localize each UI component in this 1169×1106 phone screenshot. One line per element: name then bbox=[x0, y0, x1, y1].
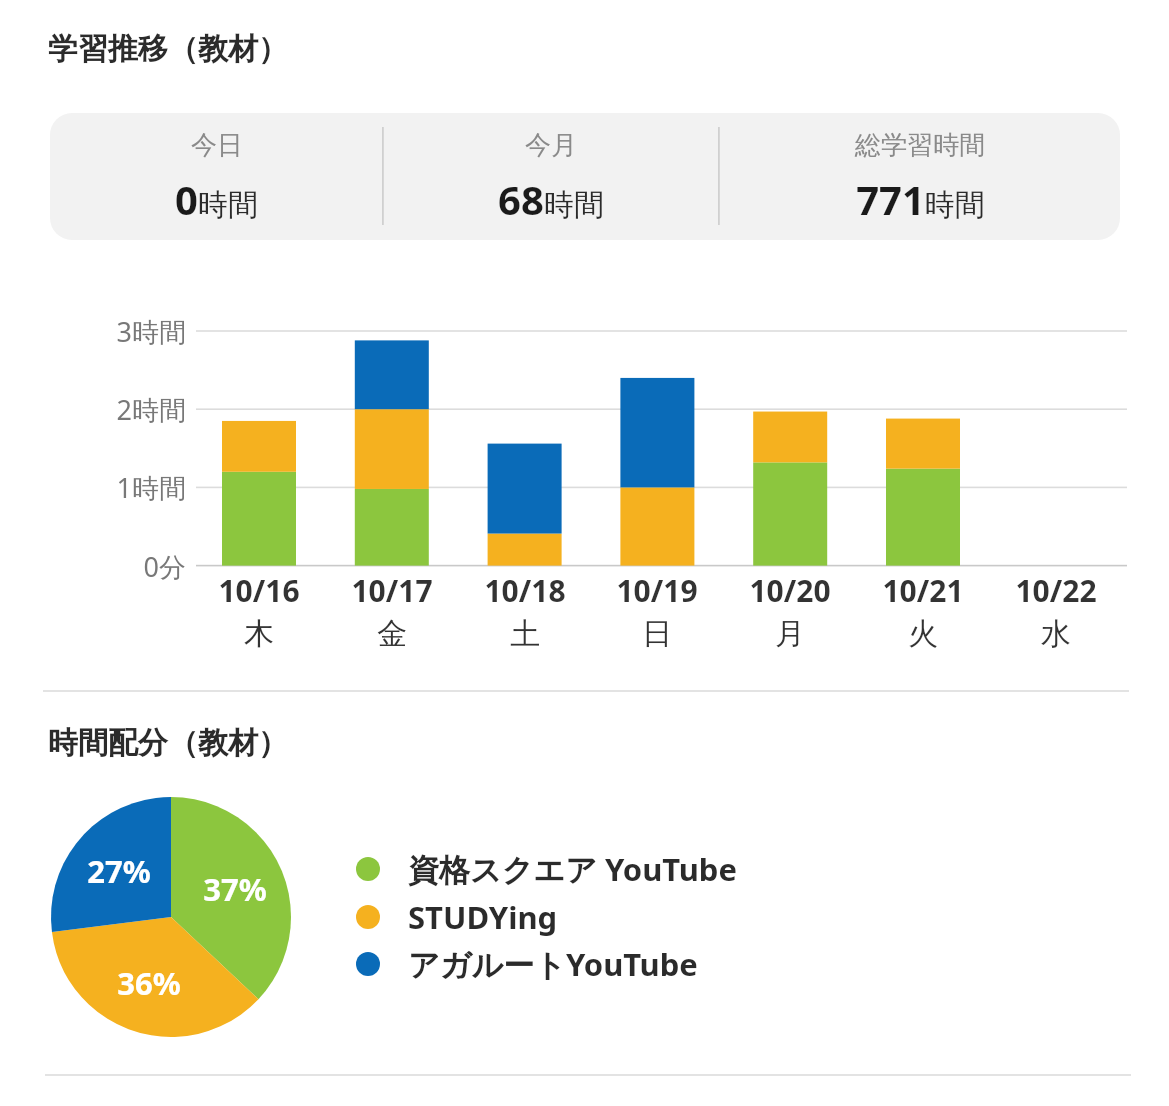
staticText: 10/18 bbox=[484, 570, 566, 611]
staticText: 土 bbox=[510, 615, 540, 650]
button[interactable]: 10/16 bbox=[189, 570, 329, 650]
staticText: 時間配分（教材） bbox=[48, 724, 288, 762]
staticText: 37% bbox=[203, 868, 267, 910]
button[interactable]: 10/21 bbox=[853, 570, 993, 650]
staticText: 0分 bbox=[143, 548, 186, 584]
button[interactable]: 10/18 bbox=[455, 570, 595, 650]
button[interactable]: 10/19 bbox=[587, 570, 727, 650]
staticText: 27% bbox=[87, 850, 151, 892]
staticText: 今月 bbox=[525, 129, 577, 162]
staticText: 2時間 bbox=[116, 391, 186, 427]
button[interactable]: 今日 bbox=[50, 113, 383, 240]
staticText: 0時間 bbox=[175, 172, 258, 226]
staticText: 10/20 bbox=[749, 570, 831, 611]
staticText: STUDYing bbox=[408, 896, 558, 938]
button[interactable]: 今月 bbox=[383, 113, 719, 240]
staticText: 10/22 bbox=[1015, 570, 1097, 611]
staticText: 木 bbox=[244, 615, 274, 650]
staticText: 学習推移（教材） bbox=[48, 30, 288, 68]
button[interactable]: 10/17 bbox=[322, 570, 462, 650]
staticText: 水 bbox=[1041, 615, 1071, 650]
staticText: 資格スクエア YouTube bbox=[408, 848, 737, 890]
staticText: 金 bbox=[377, 615, 407, 650]
button[interactable]: アガルートYouTube bbox=[356, 942, 698, 986]
staticText: 総学習時間 bbox=[855, 129, 985, 162]
staticText: 68時間 bbox=[498, 172, 604, 226]
staticText: 10/21 bbox=[882, 570, 964, 611]
staticText: 1時間 bbox=[116, 469, 186, 505]
staticText: 10/16 bbox=[218, 570, 300, 611]
staticText: 771時間 bbox=[856, 172, 985, 226]
staticText: アガルートYouTube bbox=[408, 943, 698, 985]
staticText: 月 bbox=[775, 615, 805, 650]
staticText: 3時間 bbox=[116, 313, 186, 349]
staticText: 36% bbox=[117, 962, 181, 1004]
staticText: 日 bbox=[642, 615, 672, 650]
staticText: 10/19 bbox=[616, 570, 698, 611]
button[interactable]: 総学習時間 bbox=[719, 113, 1120, 240]
staticText: 今日 bbox=[191, 129, 243, 162]
button[interactable]: 10/20 bbox=[720, 570, 860, 650]
staticText: 10/17 bbox=[351, 570, 433, 611]
button[interactable]: 10/22 bbox=[986, 570, 1126, 650]
button[interactable]: 資格スクエア YouTube bbox=[356, 847, 737, 891]
button[interactable]: 時間配分 円グラフ bbox=[51, 797, 291, 1037]
button[interactable]: STUDYing bbox=[356, 895, 558, 939]
staticText: 火 bbox=[908, 615, 938, 650]
